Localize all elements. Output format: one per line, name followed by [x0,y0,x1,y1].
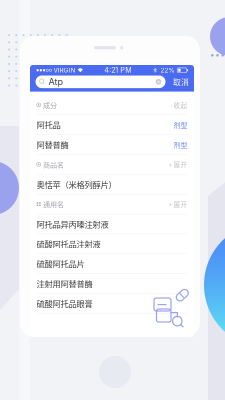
staticText: 硫酸阿托品片 [36,258,84,270]
button[interactable]: 硫酸阿托品眼膏 [30,294,194,314]
staticText: 通用名 [41,199,64,209]
staticText: 剂型 [173,120,187,130]
button[interactable]: 取消 [173,75,188,88]
button[interactable]: 奥恬苹（米格列醇片） [30,175,194,194]
staticText: 商品名 [41,159,64,169]
staticText: 阿替普酶 [36,139,68,151]
staticText: 成分 [41,100,57,110]
button[interactable]: Atp [35,75,165,88]
staticText: 阿托品 [36,119,60,131]
staticText: + 展开 [168,160,187,169]
staticText: 4:21 PM [104,66,132,75]
button[interactable]: 商品名 [30,155,194,175]
staticText: + 展开 [168,199,187,209]
staticText: 奥恬苹（米格列醇片） [36,178,116,190]
staticText: 剂型 [173,140,187,150]
button[interactable]: 通用名 [30,194,194,214]
staticText: 硫酸阿托品注射液 [36,238,100,250]
button[interactable]: 硫酸阿托品注射液 [30,234,194,254]
staticText: Atp [45,76,63,87]
button[interactable]: 阿托品 [30,115,194,135]
staticText: 阿托品异丙嗪注射液 [36,218,108,230]
staticText: VIRGIN [52,66,78,74]
button[interactable]: 注射用阿替普酶 [30,274,194,294]
button[interactable]: 阿替普酶 [30,135,194,155]
button[interactable]: 阿托品异丙嗪注射液 [30,214,194,234]
staticText: 硫酸阿托品眼膏 [36,297,92,309]
staticText: - 收起 [170,100,187,110]
staticText: 22% [156,66,176,74]
button[interactable]: 硫酸阿托品片 [30,254,194,274]
button[interactable]: 成分 [30,95,194,115]
staticText: 取消 [173,76,189,87]
staticText: 注射用阿替普酶 [36,277,92,289]
